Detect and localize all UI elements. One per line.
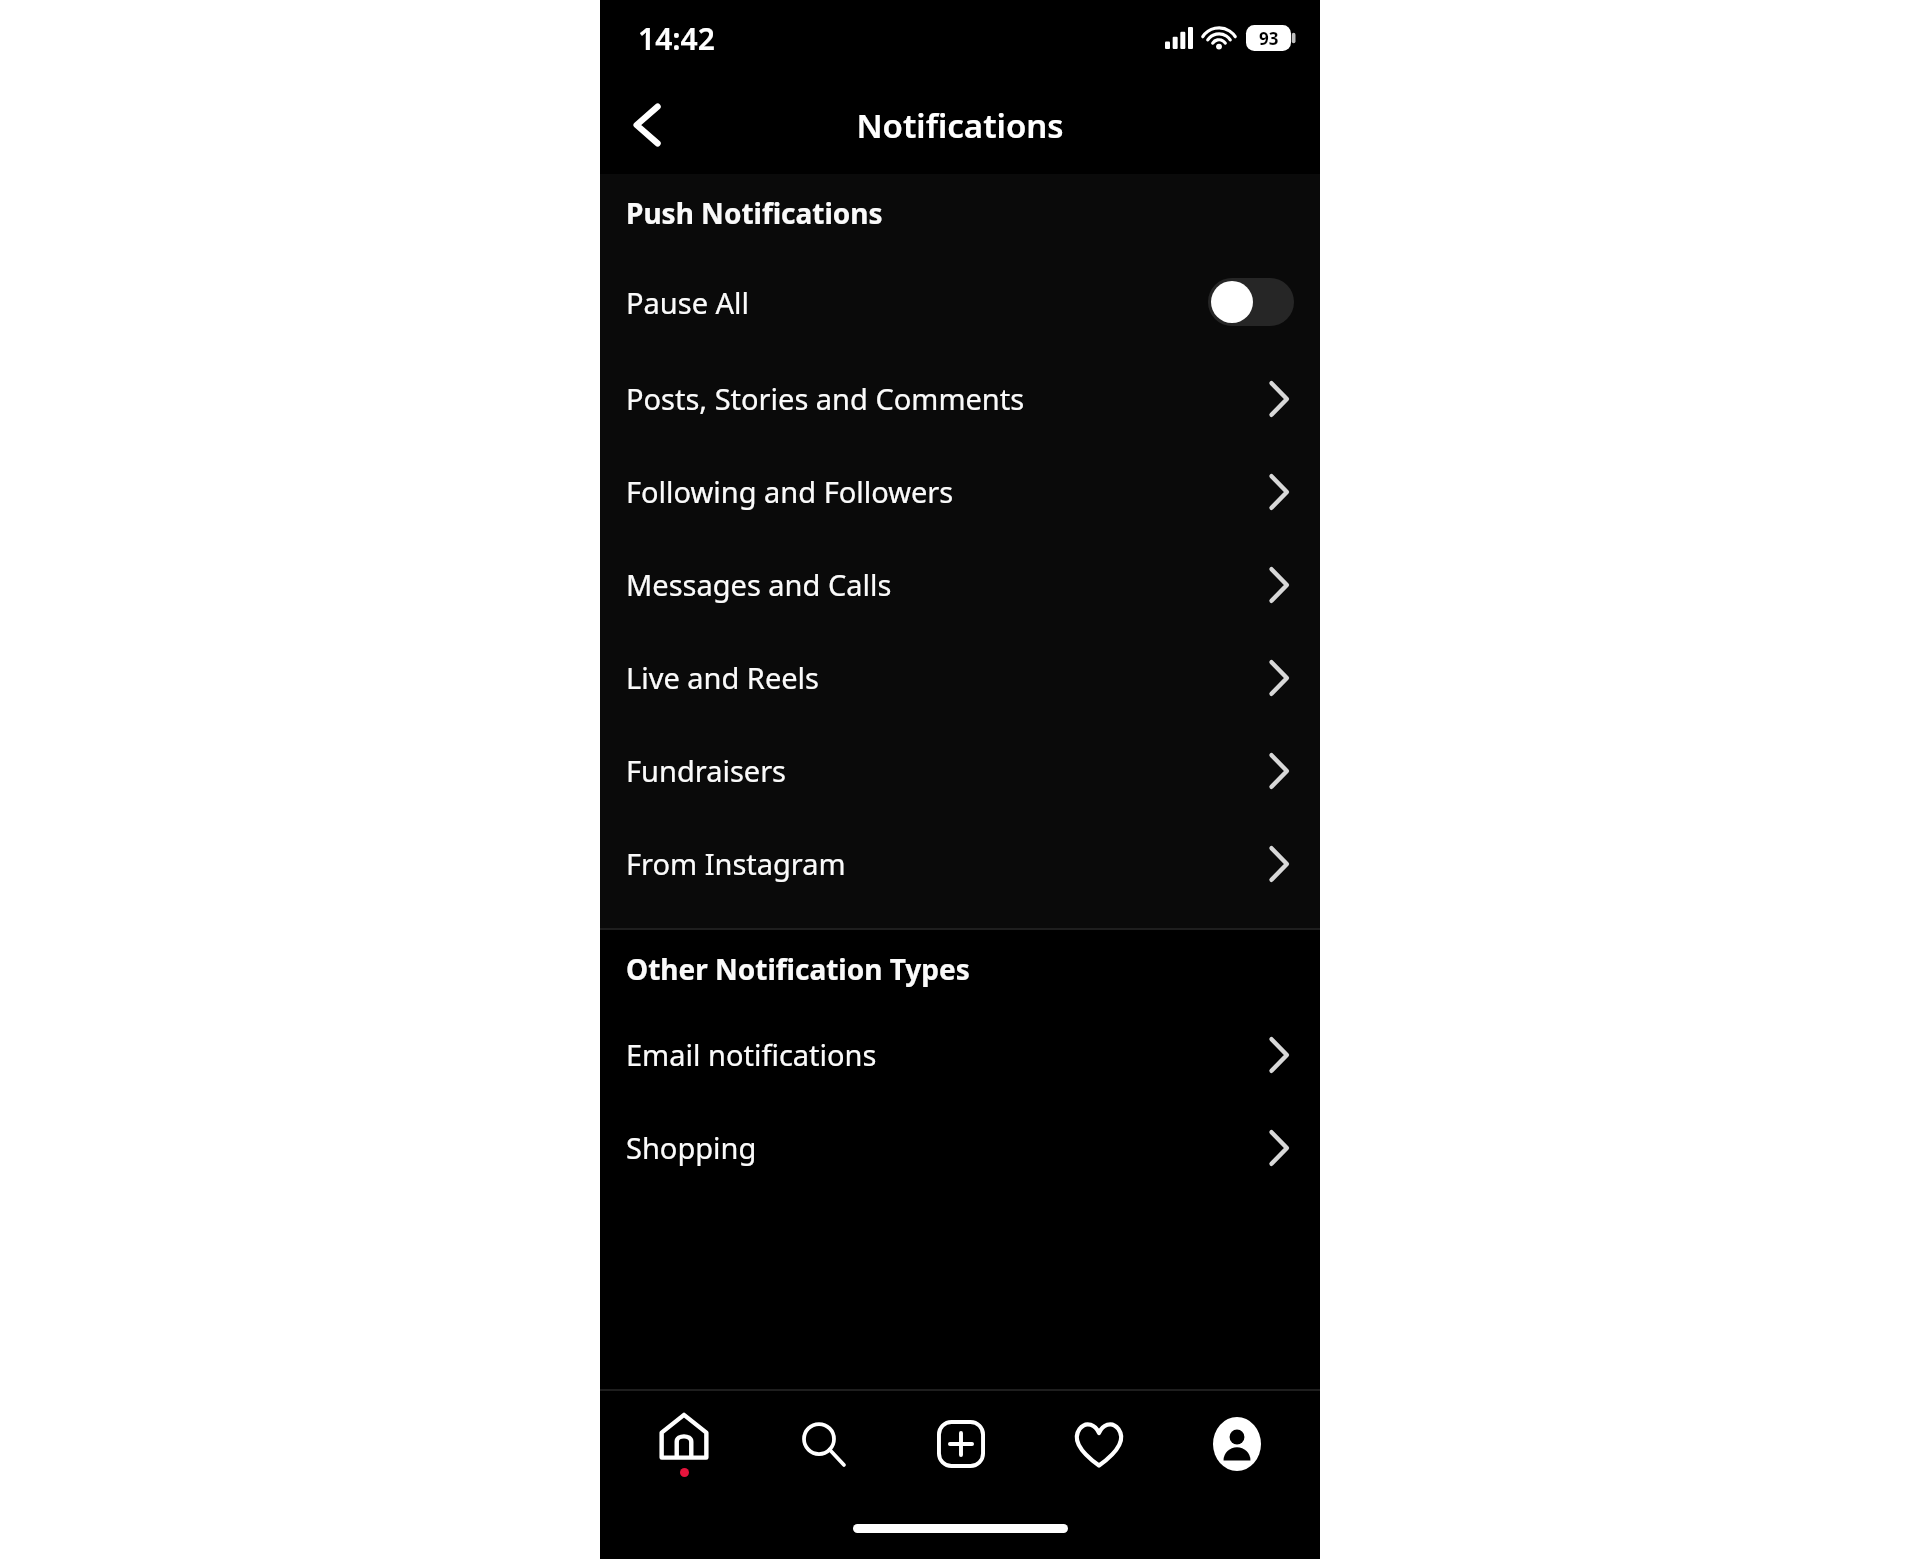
button[interactable]: Create	[892, 1391, 1030, 1497]
button[interactable]: Search	[753, 1391, 892, 1497]
button[interactable]: Posts, Stories and Comments	[600, 352, 1320, 445]
staticText: Fundraisers	[626, 751, 1268, 790]
button[interactable]: Pause All toggle, off	[1208, 278, 1294, 326]
button[interactable]: Following and Followers	[600, 445, 1320, 538]
staticText: Pause All	[626, 283, 1208, 322]
staticText: Push Notifications	[626, 194, 883, 232]
staticText: Shopping	[626, 1128, 1268, 1167]
button[interactable]: Email notifications	[600, 1008, 1320, 1101]
staticText: 14:42	[638, 18, 715, 59]
staticText: 93	[1259, 27, 1279, 50]
button[interactable]: From Instagram	[600, 817, 1320, 910]
button[interactable]: Live and Reels	[600, 631, 1320, 724]
button[interactable]: Profile	[1168, 1391, 1306, 1497]
staticText: Other Notification Types	[626, 950, 970, 988]
staticText: Following and Followers	[626, 472, 1268, 511]
button[interactable]: Shopping	[600, 1101, 1320, 1194]
button[interactable]: Pause All	[600, 252, 1320, 352]
staticText: Live and Reels	[626, 658, 1268, 697]
staticText: Notifications	[856, 103, 1064, 148]
button[interactable]: Activity	[1030, 1391, 1168, 1497]
button[interactable]: Back	[610, 87, 686, 163]
staticText: Email notifications	[626, 1035, 1268, 1074]
staticText: From Instagram	[626, 844, 1268, 883]
button[interactable]: Messages and Calls	[600, 538, 1320, 631]
staticText: Messages and Calls	[626, 565, 1268, 604]
button[interactable]: Fundraisers	[600, 724, 1320, 817]
button[interactable]: Home	[614, 1391, 753, 1497]
staticText: Posts, Stories and Comments	[626, 379, 1268, 418]
